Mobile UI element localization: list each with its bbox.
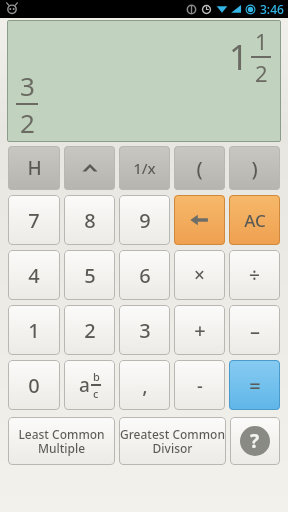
staticText: 2 — [84, 317, 96, 344]
staticText: = — [249, 372, 261, 399]
button[interactable]: 1 — [8, 305, 60, 355]
staticText: - — [197, 373, 203, 398]
button[interactable]: key — [174, 195, 225, 245]
staticText: – — [250, 317, 260, 344]
staticText: × — [194, 262, 205, 288]
staticText: c — [93, 386, 99, 401]
button[interactable]: 1 — [7, 20, 281, 142]
staticText: + — [194, 317, 206, 344]
staticText: 4 — [28, 262, 40, 289]
button[interactable]: 8 — [64, 195, 115, 245]
button[interactable]: H — [8, 146, 60, 190]
button[interactable]: , — [119, 360, 170, 410]
button[interactable]: key — [64, 360, 115, 410]
button[interactable]: AC — [229, 195, 280, 245]
button[interactable]: Least Common Multiple — [8, 417, 115, 465]
staticText: 6 — [139, 262, 151, 289]
button[interactable]: 9 — [119, 195, 170, 245]
button[interactable]: ) — [229, 146, 280, 190]
staticText: 9 — [139, 207, 151, 234]
staticText: 0 — [28, 372, 40, 399]
button[interactable]: 1/x — [119, 146, 170, 190]
staticText: 1 — [28, 317, 40, 344]
staticText: 5 — [84, 262, 96, 289]
other: Backspace — [189, 209, 211, 231]
button[interactable]: = — [229, 360, 280, 410]
staticText: 1 — [229, 34, 249, 80]
button[interactable]: ÷ — [229, 250, 280, 300]
staticText: 7 — [28, 207, 40, 234]
staticText: 2 — [20, 105, 35, 140]
button[interactable]: – — [229, 305, 280, 355]
staticText: b — [93, 369, 100, 384]
staticText: 8 — [84, 207, 96, 234]
staticText: AC — [244, 209, 266, 232]
button[interactable]: Greatest Common Divisor — [119, 417, 226, 465]
staticText: Greatest Common Divisor — [120, 426, 225, 457]
staticText: , — [142, 372, 148, 399]
button[interactable]: key — [64, 146, 115, 190]
staticText: 1 — [255, 26, 268, 56]
button[interactable]: ( — [174, 146, 225, 190]
staticText: ( — [196, 155, 203, 182]
staticText: 2 — [255, 58, 268, 88]
staticText: Least Common Multiple — [18, 426, 105, 457]
button[interactable]: - — [174, 360, 225, 410]
button[interactable]: 6 — [119, 250, 170, 300]
button[interactable]: 2 — [64, 305, 115, 355]
other: Mixed fraction — [79, 369, 101, 401]
staticText: 1/x — [133, 158, 156, 178]
staticText: 3 — [139, 317, 151, 344]
button[interactable]: + — [174, 305, 225, 355]
button[interactable]: 5 — [64, 250, 115, 300]
button[interactable]: 7 — [8, 195, 60, 245]
staticText: 3:46 — [260, 1, 284, 17]
button[interactable]: 4 — [8, 250, 60, 300]
staticText: ? — [250, 428, 260, 454]
staticText: H — [27, 155, 42, 181]
staticText: a — [79, 372, 90, 398]
staticText: ) — [251, 155, 258, 182]
button[interactable]: × — [174, 250, 225, 300]
button[interactable]: 0 — [8, 360, 60, 410]
staticText: ÷ — [249, 262, 260, 288]
button[interactable]: Help — [230, 417, 280, 465]
button[interactable]: 3 — [119, 305, 170, 355]
staticText: 3 — [20, 68, 35, 103]
